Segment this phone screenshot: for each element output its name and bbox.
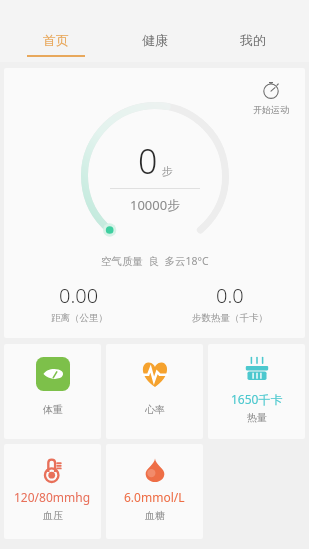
staticText: 健康 xyxy=(142,32,168,48)
staticText: 距离（公里） xyxy=(51,312,108,324)
button[interactable]: 健康 xyxy=(112,32,198,62)
button[interactable]: 我的 xyxy=(210,32,296,62)
button[interactable]: 开始运动 xyxy=(4,68,305,338)
staticText: 血糖 xyxy=(145,509,165,522)
staticText: 血压 xyxy=(43,509,63,522)
staticText: 步 xyxy=(162,164,173,178)
staticText: 体重 xyxy=(43,403,63,416)
staticText: 0.00 xyxy=(59,282,99,309)
staticText: 1650千卡 xyxy=(231,391,283,407)
button[interactable]: 0.00 xyxy=(4,282,154,324)
button[interactable]: 120/80mmhg xyxy=(4,444,101,539)
staticText: 步数热量（千卡） xyxy=(192,312,268,324)
button[interactable]: 首页 xyxy=(13,32,99,62)
staticText: 120/80mmhg xyxy=(14,489,91,505)
staticText: 空气质量 良 多云18°C xyxy=(101,254,209,268)
staticText: 首页 xyxy=(43,32,69,48)
staticText: 开始运动 xyxy=(253,104,289,115)
staticText: 0 xyxy=(138,138,158,184)
staticText: 6.0mmol/L xyxy=(124,489,185,505)
staticText: 我的 xyxy=(240,32,266,48)
staticText: 心率 xyxy=(145,403,165,416)
button[interactable]: 0.0 xyxy=(154,282,305,324)
staticText: 0.0 xyxy=(216,282,244,309)
staticText: 10000步 xyxy=(130,196,181,214)
staticText: 热量 xyxy=(247,411,267,424)
button[interactable]: 心率 xyxy=(106,344,203,439)
button[interactable]: 6.0mmol/L xyxy=(106,444,203,539)
button[interactable]: 体重 xyxy=(4,344,101,439)
button[interactable]: 1650千卡 xyxy=(208,344,305,439)
button[interactable]: 开始运动 xyxy=(249,76,293,119)
